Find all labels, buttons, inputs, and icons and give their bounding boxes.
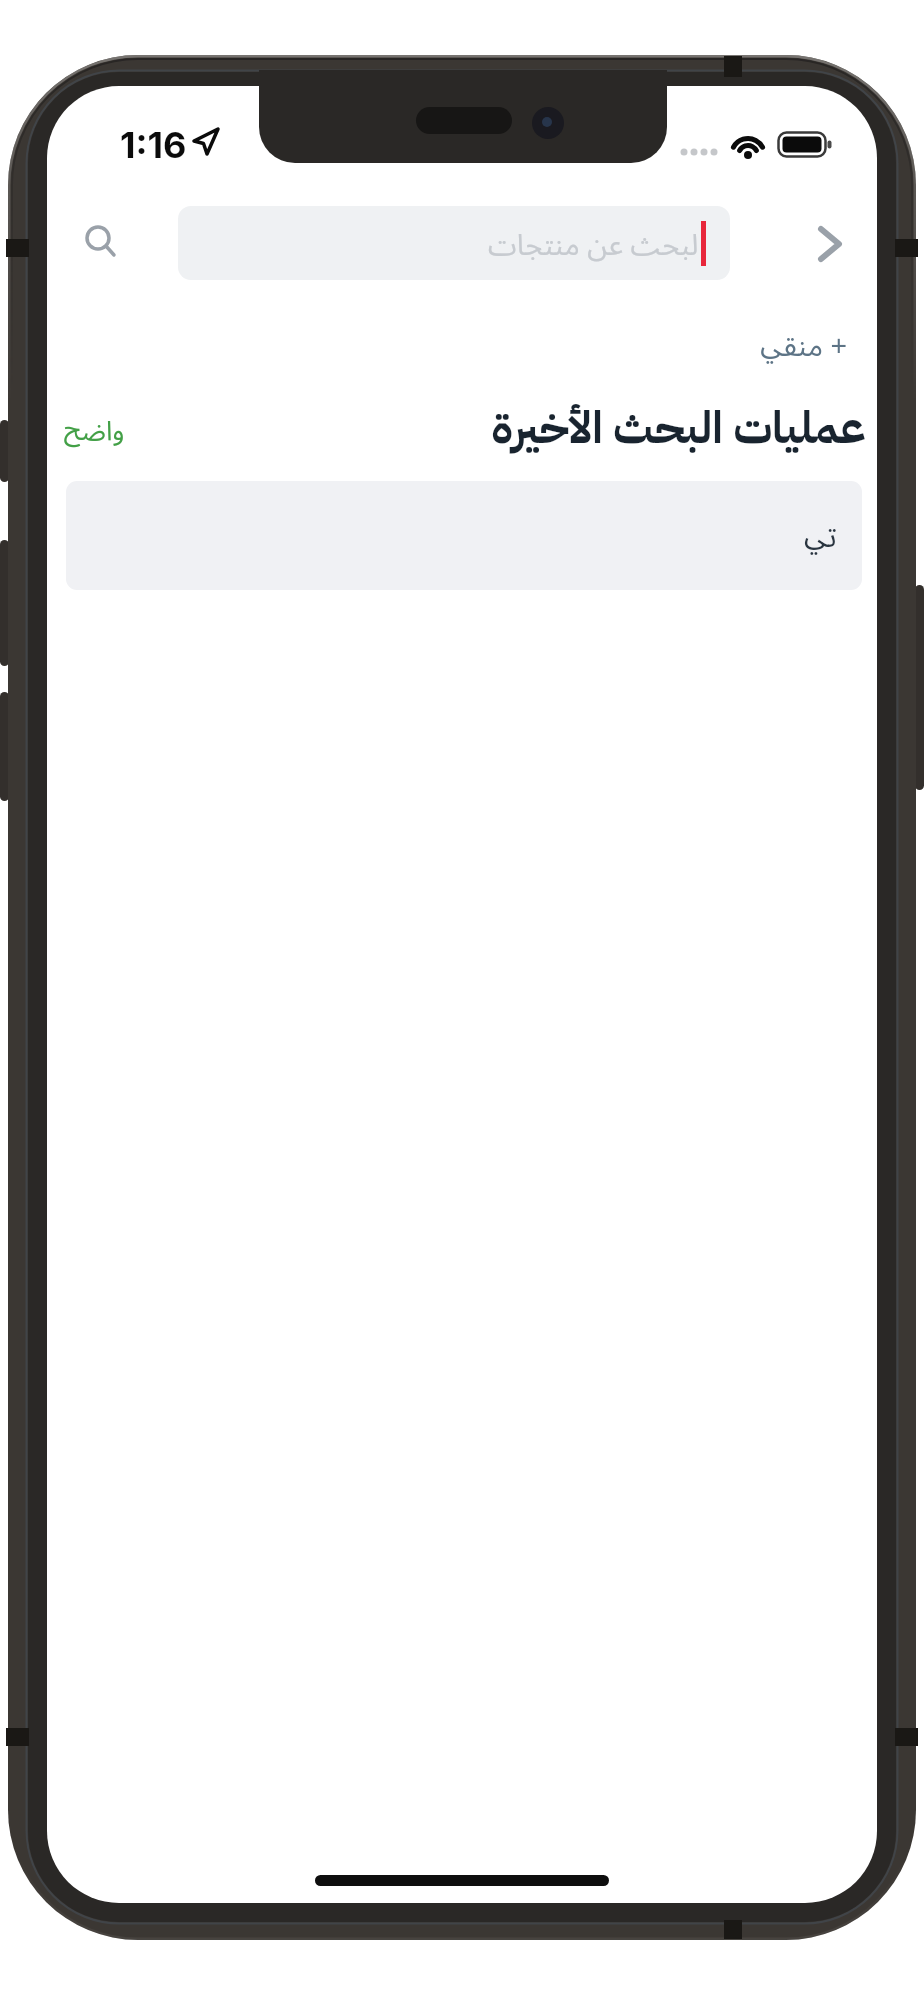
button[interactable]: تي	[66, 481, 862, 590]
staticText: تي	[804, 515, 837, 556]
staticText: لبحث عن منتجات	[488, 224, 699, 263]
staticText: واضح	[64, 411, 125, 448]
staticText: 1:16	[120, 123, 187, 167]
button[interactable]	[77, 218, 125, 266]
button[interactable]: + منقي	[547, 320, 847, 368]
staticText: عمليات البحث الأخيرة	[492, 395, 866, 461]
staticText: + منقي	[760, 325, 847, 364]
button[interactable]: واضح	[64, 405, 184, 453]
button[interactable]: لبحث عن منتجات	[178, 206, 730, 280]
button[interactable]	[802, 216, 858, 272]
